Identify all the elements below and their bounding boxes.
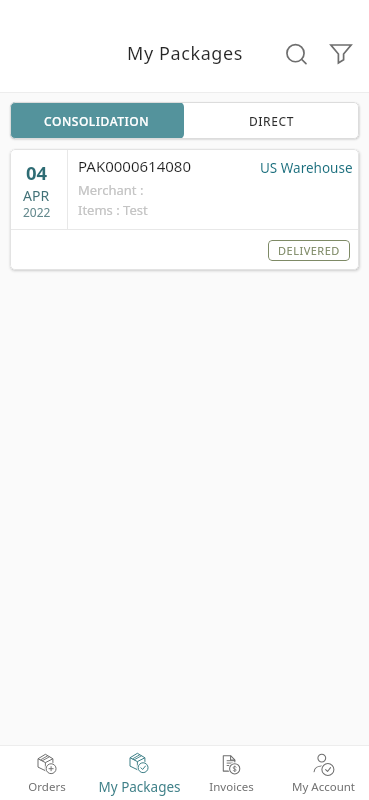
staticText: DIRECT: [249, 113, 294, 129]
staticText: Items : Test: [78, 201, 148, 219]
staticText: My Packages: [98, 778, 181, 796]
staticText: My Packages: [127, 41, 243, 66]
button[interactable]: DIRECT: [184, 102, 359, 139]
staticText: 04: [26, 160, 48, 185]
button[interactable]: Filter: [323, 36, 359, 72]
button[interactable]: CONSOLIDATION: [10, 102, 184, 139]
button[interactable]: Invoices: [185, 746, 277, 800]
staticText: Orders: [28, 779, 66, 795]
staticText: US Warehouse: [260, 159, 353, 177]
staticText: PAK0000614080: [78, 156, 191, 176]
staticText: APR: [23, 186, 50, 205]
staticText: 2022: [23, 204, 51, 220]
staticText: My Account: [292, 779, 355, 795]
staticText: Merchant :: [78, 181, 144, 199]
staticText: CONSOLIDATION: [44, 113, 150, 129]
button[interactable]: My Account: [277, 746, 369, 800]
staticText: Invoices: [209, 779, 254, 795]
button[interactable]: My Packages: [93, 746, 185, 800]
staticText: DELIVERED: [278, 243, 340, 258]
button[interactable]: 04: [10, 149, 359, 270]
button[interactable]: DELIVERED: [268, 240, 350, 261]
button[interactable]: Search: [278, 37, 314, 73]
button[interactable]: Orders: [0, 746, 93, 800]
